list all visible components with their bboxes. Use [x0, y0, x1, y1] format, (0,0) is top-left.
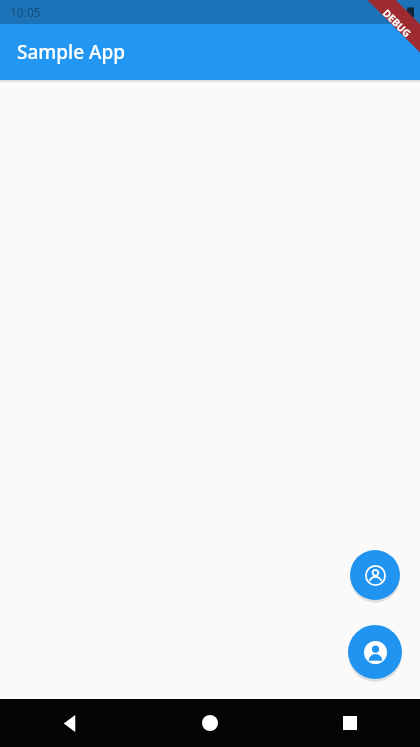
button[interactable]: Account — [350, 550, 400, 600]
staticText: DEBUG — [371, 0, 420, 49]
staticText: 10:05 — [10, 4, 41, 20]
button[interactable]: Back — [0, 699, 140, 747]
staticText: Sample App — [17, 39, 126, 65]
button[interactable]: Recent apps — [280, 699, 420, 747]
button[interactable]: Profile — [348, 625, 402, 679]
button[interactable]: Home — [140, 699, 280, 747]
